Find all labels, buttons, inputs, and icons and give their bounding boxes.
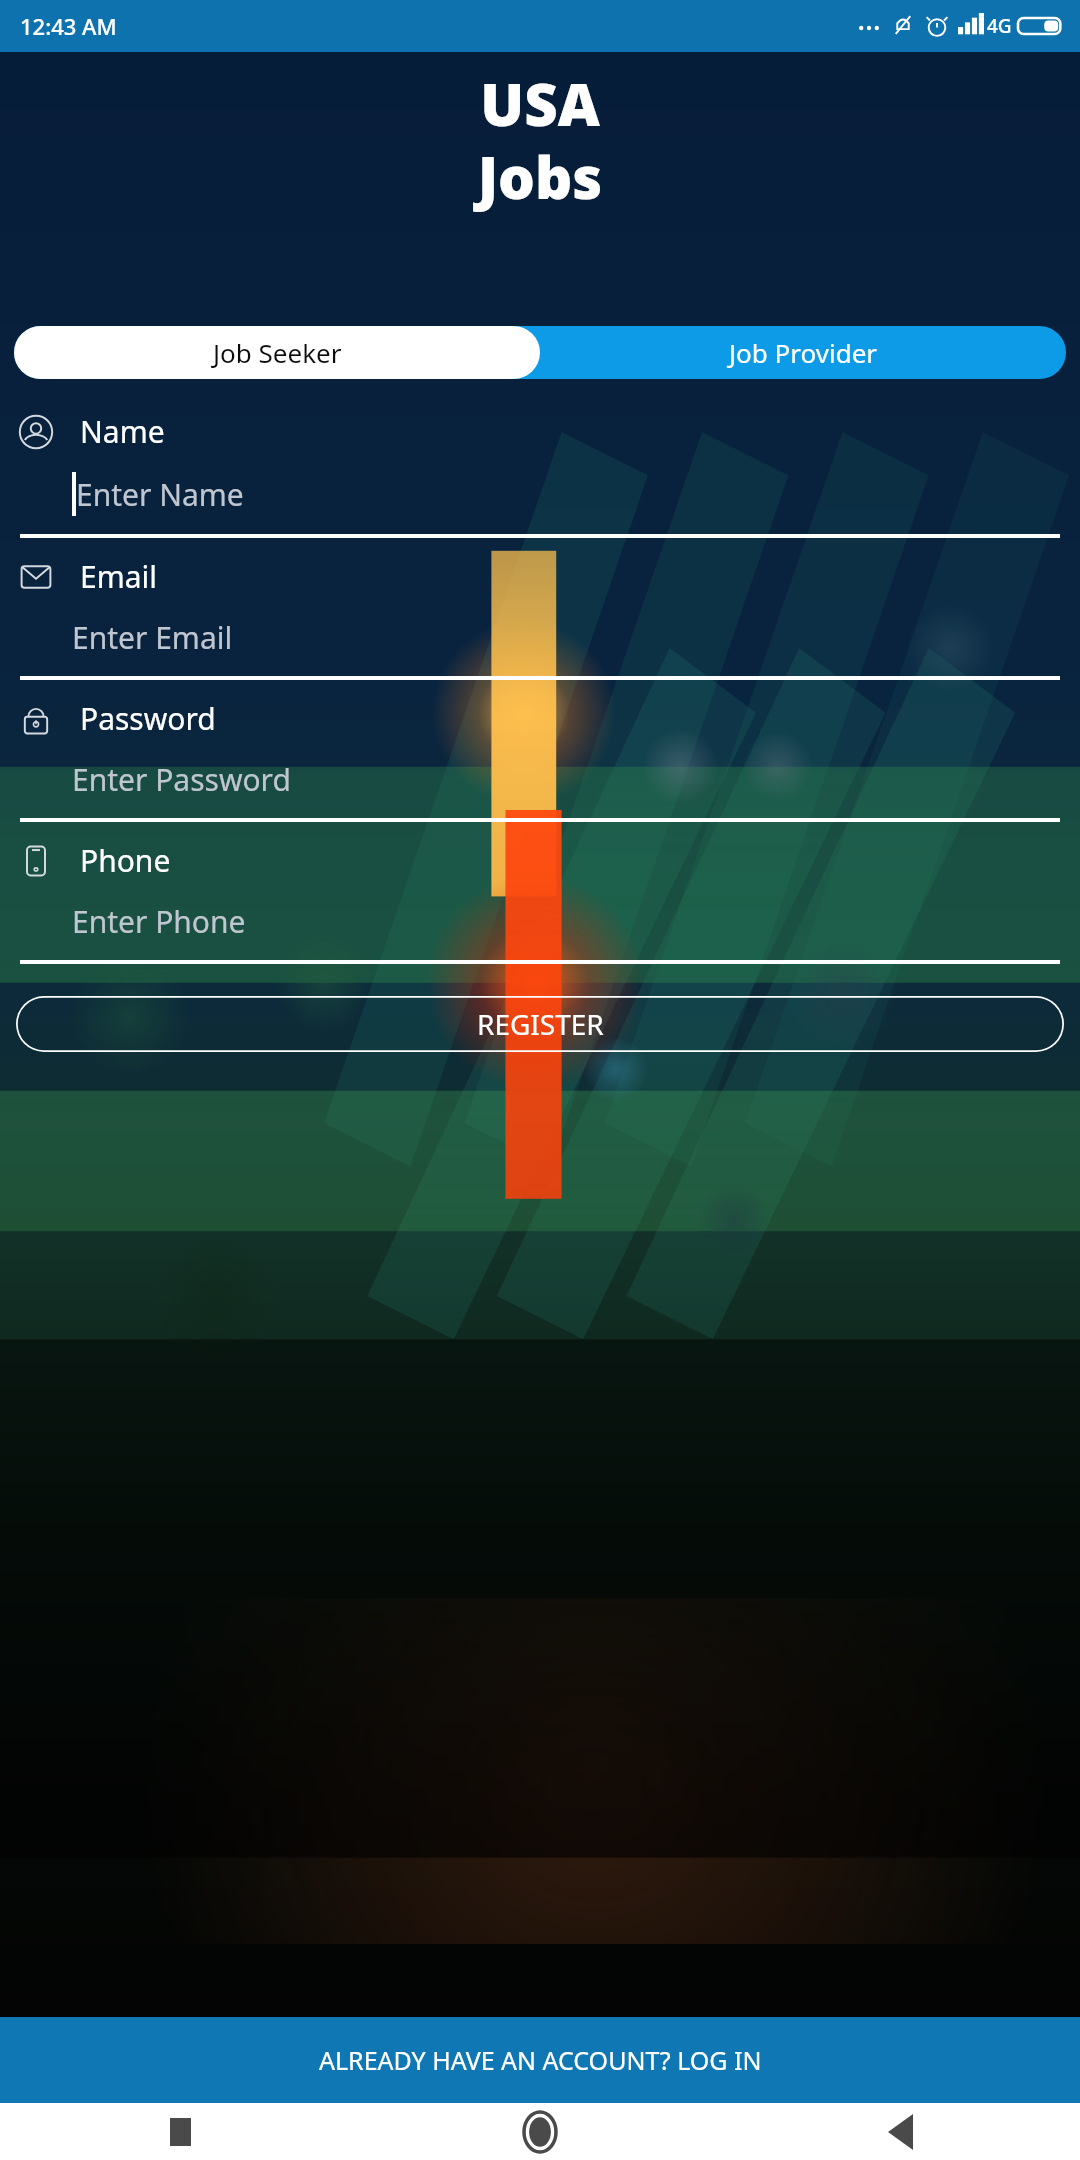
button[interactable]: Recents [0, 2103, 360, 2160]
staticText: Enter Phone [72, 901, 246, 942]
button[interactable]: ALREADY HAVE AN ACCOUNT? LOG IN [0, 2017, 1080, 2103]
staticText: Enter Password [72, 759, 291, 800]
staticText: ALREADY HAVE AN ACCOUNT? LOG IN [319, 2043, 762, 2077]
button[interactable]: Back [720, 2103, 1080, 2160]
staticText: Job Provider [729, 335, 878, 370]
button[interactable]: Phone [16, 840, 1064, 982]
button[interactable]: Name [16, 411, 1064, 556]
staticText: Job Seeker [213, 335, 342, 370]
staticText: Enter Email [72, 617, 233, 658]
staticText: Jobs [0, 137, 1080, 216]
staticText: Password [80, 698, 216, 739]
button[interactable]: Password [16, 698, 1064, 840]
staticText: Enter Name [76, 474, 244, 515]
staticText: 4G [987, 13, 1012, 39]
staticText: Email [80, 556, 158, 597]
staticText: Phone [80, 840, 171, 881]
staticText: Name [80, 411, 165, 452]
button[interactable]: Job Seeker [14, 326, 540, 379]
staticText: USA [0, 64, 1080, 143]
button[interactable]: Email [16, 556, 1064, 698]
button[interactable]: REGISTER [16, 996, 1064, 1052]
button[interactable]: Home [360, 2103, 720, 2160]
staticText: REGISTER [477, 1005, 604, 1043]
button[interactable]: Job Provider [540, 326, 1066, 379]
staticText: 12:43 AM [20, 11, 117, 41]
